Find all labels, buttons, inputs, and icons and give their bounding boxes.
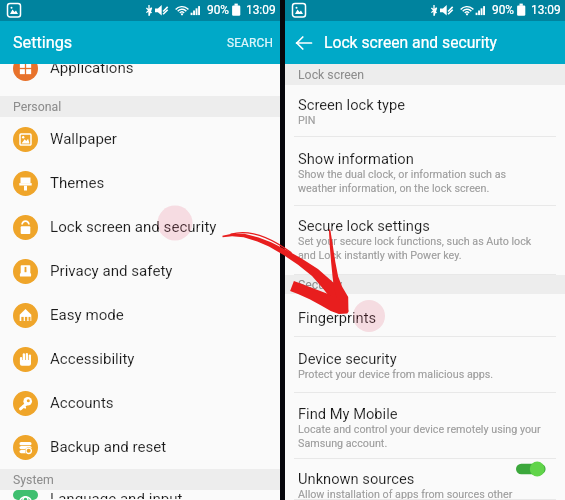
button[interactable]: Easy mode (0, 293, 280, 337)
button[interactable]: Privacy and safety (0, 249, 280, 293)
staticText: Allow installation of apps from sources … (298, 488, 513, 500)
button[interactable]: Accessibility (0, 337, 280, 381)
staticText: Find My Mobile (298, 405, 398, 422)
staticText: Protect your device from malicious apps. (298, 368, 494, 381)
button[interactable]: Lock screen and security (0, 205, 280, 249)
button[interactable]: Find My Mobile (285, 393, 565, 459)
staticText: Secure lock settings (298, 217, 430, 234)
staticText: Lock screen and security (324, 33, 498, 51)
staticText: 13:09 (531, 3, 561, 17)
staticText: Settings (13, 33, 73, 52)
staticText: 13:09 (246, 3, 276, 17)
staticText: Accounts (50, 394, 114, 412)
button[interactable]: Applications (0, 64, 280, 84)
staticText: Locate and control your device remotely … (298, 423, 541, 449)
button[interactable]: Fingerprints (285, 294, 565, 337)
button[interactable]: Settings (0, 21, 280, 64)
button[interactable]: Device security (285, 337, 565, 393)
staticText: Unknown sources (298, 470, 415, 487)
button[interactable]: Language and input (0, 490, 280, 500)
staticText: Security (298, 278, 343, 292)
button[interactable]: Unknown sources toggle (516, 459, 550, 479)
staticText: Personal (13, 100, 62, 114)
button[interactable]: SEARCH (218, 27, 280, 59)
staticText: Language and input (50, 490, 183, 499)
staticText: PIN (298, 114, 316, 127)
staticText: Show the dual clock, or information such… (298, 168, 507, 194)
button[interactable]: Show information (285, 137, 565, 206)
staticText: System (13, 473, 54, 487)
staticText: Easy mode (50, 306, 124, 324)
staticText: Show information (298, 150, 414, 167)
staticText: Privacy and safety (50, 262, 173, 280)
button[interactable]: Unknown sources (285, 459, 565, 500)
staticText: Lock screen and security (50, 218, 217, 236)
staticText: Lock screen (298, 68, 365, 82)
staticText: Fingerprints (298, 309, 377, 326)
staticText: 90% (492, 3, 515, 17)
staticText: Screen lock type (298, 96, 406, 113)
button[interactable]: Themes (0, 161, 280, 205)
button[interactable]: Accounts (0, 381, 280, 425)
button[interactable]: Navigate up (285, 21, 323, 64)
staticText: Themes (50, 174, 105, 192)
button[interactable]: Secure lock settings (285, 206, 565, 275)
staticText: SEARCH (227, 36, 274, 50)
button[interactable]: Screen lock type (285, 85, 565, 137)
staticText: 90% (207, 3, 230, 17)
staticText: Accessibility (50, 350, 135, 368)
staticText: Set your secure lock functions, such as … (298, 235, 532, 261)
staticText: Backup and reset (50, 438, 167, 456)
staticText: Wallpaper (50, 130, 117, 148)
button[interactable]: Backup and reset (0, 425, 280, 469)
button[interactable]: Wallpaper (0, 117, 280, 161)
staticText: Applications (50, 64, 134, 77)
staticText: Device security (298, 350, 397, 367)
